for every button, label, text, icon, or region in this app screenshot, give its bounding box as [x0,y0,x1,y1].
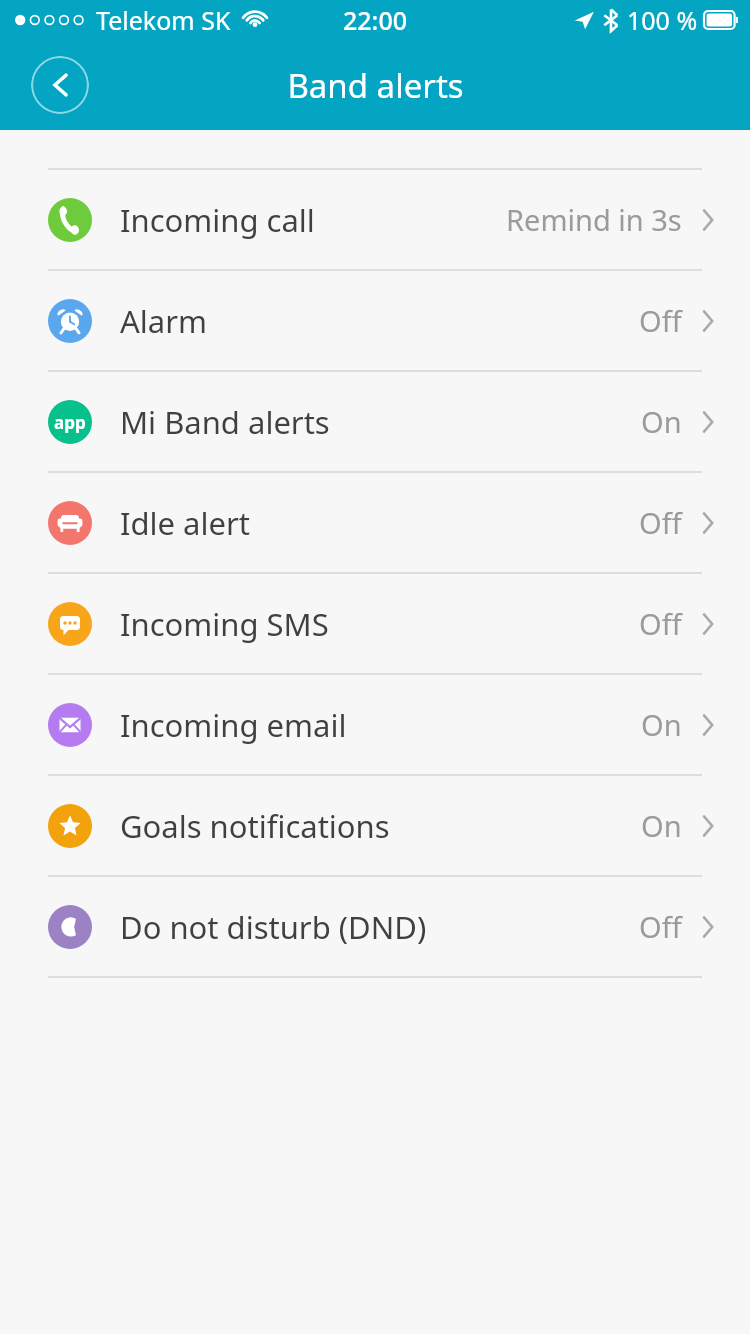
button[interactable]: Back [31,56,89,114]
staticText: Incoming SMS [120,603,329,645]
staticText: Do not disturb (DND) [120,906,427,948]
staticText: Off [639,301,682,340]
staticText: Alarm [120,300,207,342]
staticText: Idle alert [120,502,250,544]
button[interactable]: Incoming email [0,675,750,774]
button[interactable]: app [0,372,750,471]
staticText: Telekom SK [96,3,231,37]
button[interactable]: Incoming call [0,170,750,269]
button[interactable]: Do not disturb (DND) [0,877,750,976]
staticText: 100 % [627,3,698,37]
staticText: Off [639,907,682,946]
staticText: Incoming call [120,199,315,241]
staticText: On [641,806,682,845]
button[interactable]: Alarm [0,271,750,370]
staticText: 22:00 [343,3,408,37]
staticText: Incoming email [120,704,347,746]
staticText: Mi Band alerts [120,401,330,443]
staticText: On [641,402,682,441]
staticText: Remind in 3s [506,200,682,239]
button[interactable]: Incoming SMS [0,574,750,673]
button[interactable]: Goals notifications [0,776,750,875]
staticText: Off [639,503,682,542]
staticText: app [54,411,86,434]
button[interactable]: Idle alert [0,473,750,572]
staticText: On [641,705,682,744]
staticText: Band alerts [287,63,464,108]
staticText: Goals notifications [120,805,390,847]
staticText: Off [639,604,682,643]
